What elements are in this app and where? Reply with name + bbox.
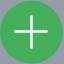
button[interactable]: Add [0, 0, 64, 64]
